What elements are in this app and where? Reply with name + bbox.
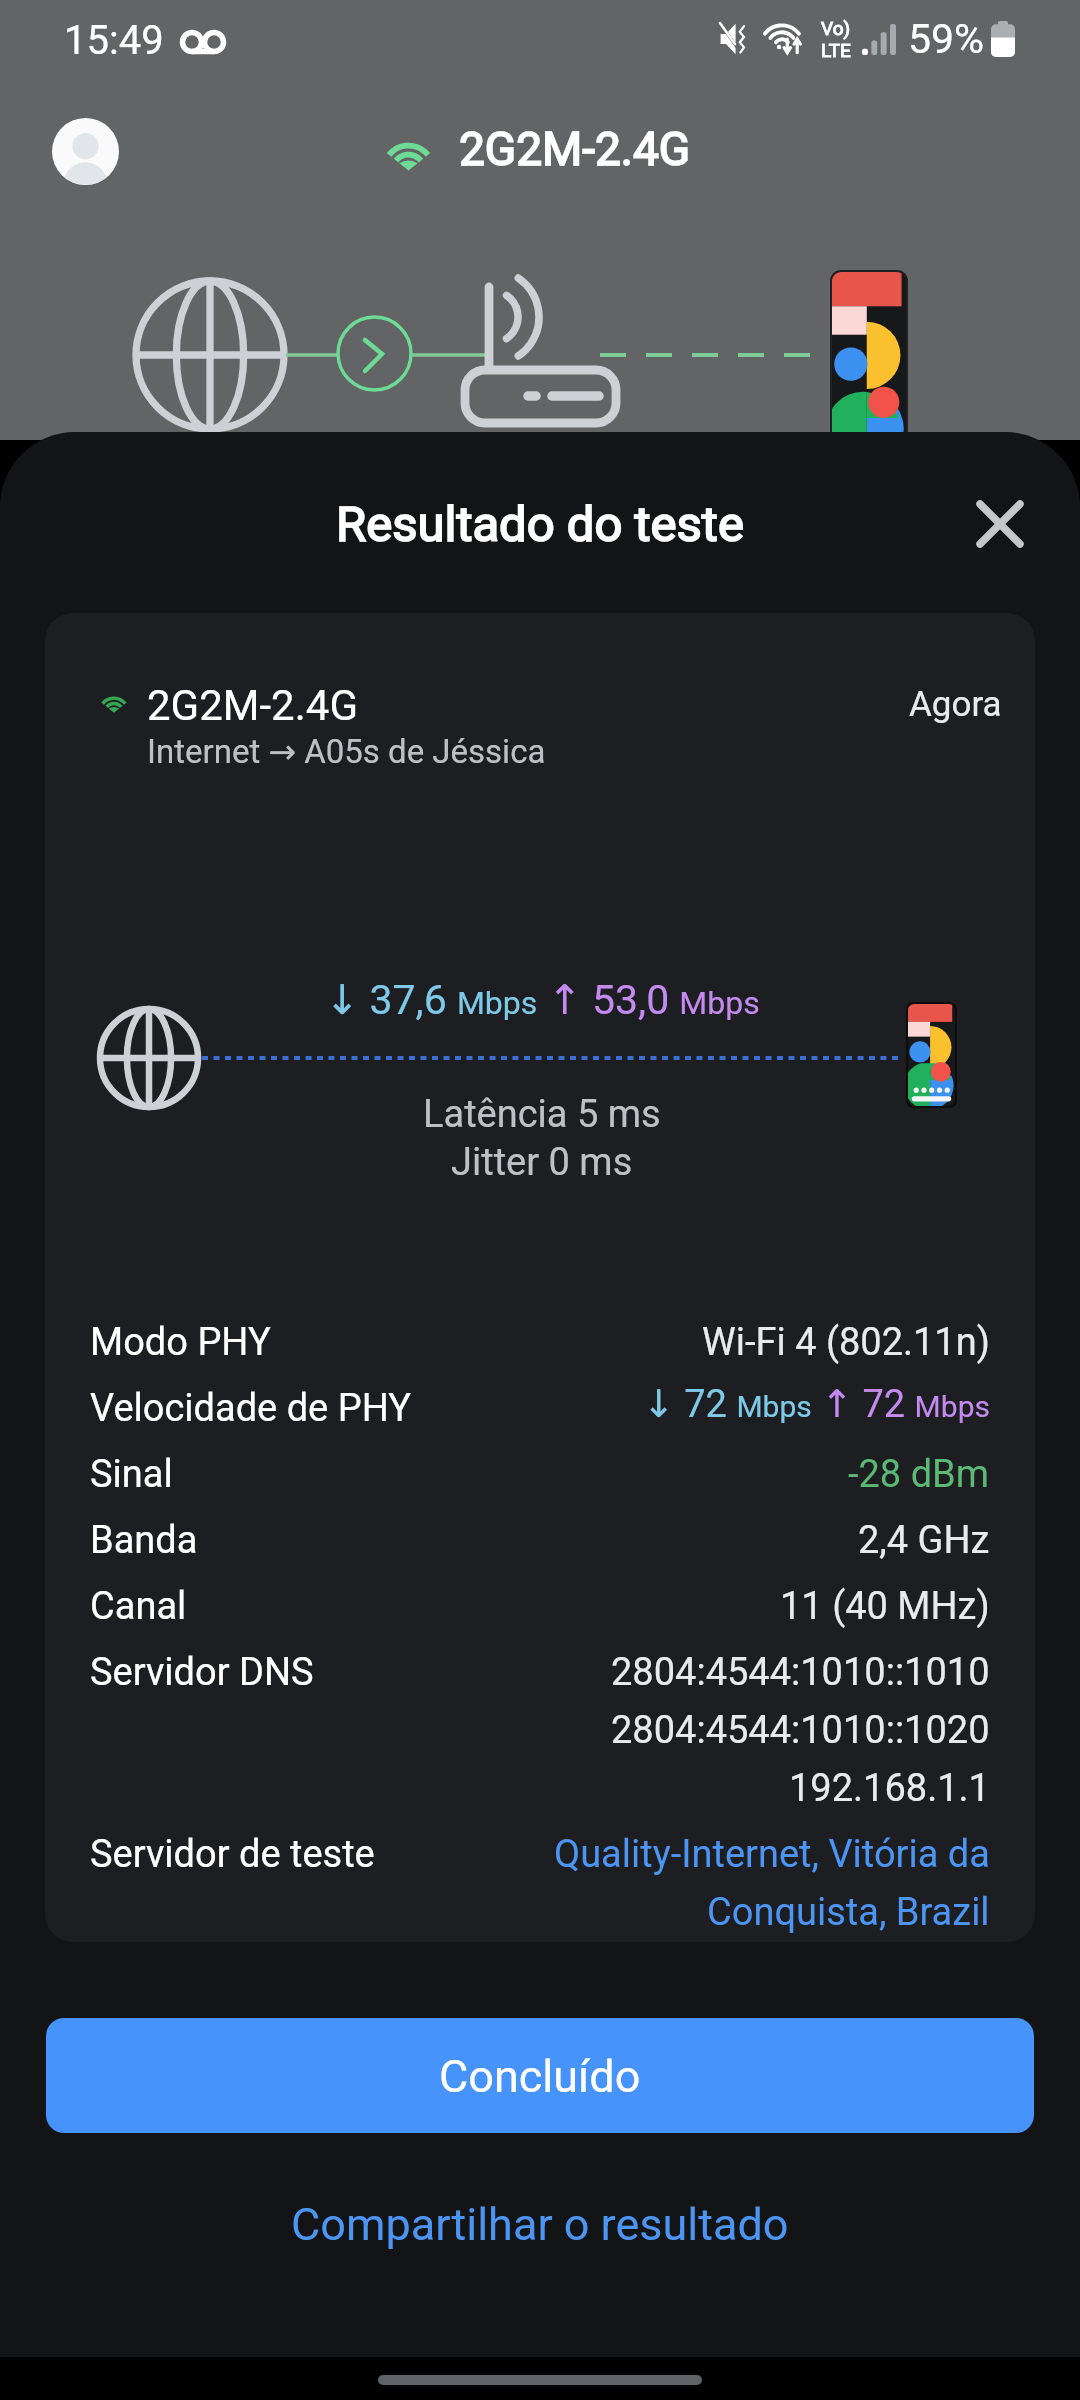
staticText: ↓ 72 Mbps ↑ 72 Mbps xyxy=(643,1382,990,1427)
staticText: 2G2M-2.4G xyxy=(459,122,691,176)
staticText: 2804:4544:1010::1010 xyxy=(611,1650,990,1695)
button[interactable]: Concluído xyxy=(46,2018,1034,2133)
staticText: Compartilhar o resultado xyxy=(291,2198,789,2251)
staticText: 2804:4544:1010::1020 xyxy=(611,1708,990,1753)
staticText: Concluído xyxy=(439,2050,641,2103)
button[interactable]: Fechar xyxy=(962,486,1038,562)
staticText: 2,4 GHz xyxy=(858,1518,990,1563)
staticText: 2G2M-2.4G xyxy=(147,681,358,730)
staticText: 192.168.1.1 xyxy=(789,1766,990,1811)
staticText: Sinal xyxy=(90,1452,173,1497)
staticText: Conquista, Brazil xyxy=(707,1890,990,1935)
staticText: Banda xyxy=(90,1518,198,1563)
staticText: Wi-Fi 4 (802.11n) xyxy=(702,1320,990,1365)
staticText: Servidor de teste xyxy=(90,1832,375,1877)
staticText: 11 (40 MHz) xyxy=(780,1584,990,1629)
button[interactable]: Conta xyxy=(52,118,119,185)
staticText: Velocidade de PHY xyxy=(90,1386,412,1431)
staticText: Agora xyxy=(909,684,1002,725)
staticText: -28 dBm xyxy=(848,1452,990,1497)
staticText: LTE xyxy=(821,39,851,61)
staticText: Vo) xyxy=(821,17,851,39)
staticText: Internet → A05s de Jéssica xyxy=(147,732,546,771)
staticText: ↓ 37,6 Mbps ↑ 53,0 Mbps xyxy=(325,976,760,1024)
staticText: Jitter 0 ms xyxy=(451,1140,633,1185)
staticText: Modo PHY xyxy=(90,1320,271,1365)
button[interactable]: Compartilhar o resultado xyxy=(261,2184,819,2265)
staticText: Servidor DNS xyxy=(90,1650,314,1695)
staticText: Quality-Internet, Vitória da xyxy=(554,1832,990,1877)
staticText: Latência 5 ms xyxy=(423,1092,661,1137)
staticText: Resultado do teste xyxy=(336,496,744,553)
staticText: 59% xyxy=(908,15,985,63)
staticText: 15:49 xyxy=(64,17,164,64)
staticText: Canal xyxy=(90,1584,187,1629)
